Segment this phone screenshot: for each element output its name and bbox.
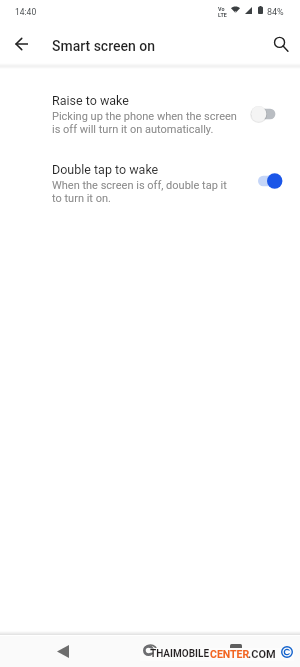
staticText: Vo — [218, 6, 225, 12]
button[interactable]: Back — [40, 635, 86, 667]
staticText: THAIMOBILE — [150, 648, 210, 660]
staticText: Raise to wake — [52, 93, 129, 108]
staticText: Smart screen on — [52, 38, 156, 54]
button[interactable]: Recent apps — [213, 635, 259, 667]
staticText: CENTER — [210, 648, 250, 660]
staticText: LTE — [218, 12, 227, 18]
button[interactable]: Navigate up — [5, 27, 39, 61]
staticText: Double tap to wake — [52, 162, 159, 177]
staticText: 84% — [267, 7, 284, 18]
button[interactable]: Raise to wake — [0, 93, 300, 141]
button[interactable]: Search — [264, 27, 298, 61]
staticText: 14:40 — [15, 7, 37, 17]
staticText: .COM — [248, 648, 276, 661]
button[interactable]: Home — [127, 635, 173, 667]
button[interactable]: Off — [251, 105, 277, 123]
button[interactable]: On — [258, 172, 284, 190]
staticText: Picking up the phone when the screen is … — [52, 110, 237, 136]
staticText: When the screen is off, double tap it to… — [52, 179, 227, 205]
button[interactable]: Double tap to wake — [0, 162, 300, 210]
